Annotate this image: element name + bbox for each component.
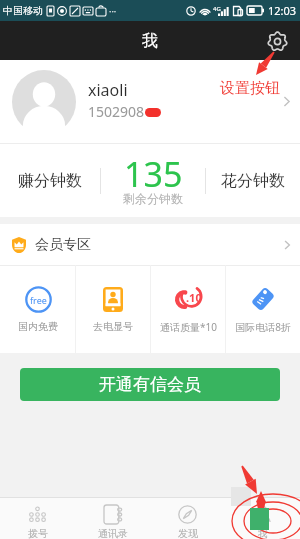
staticText: 会员专区 bbox=[35, 236, 91, 254]
staticText: 国内免费 bbox=[18, 320, 58, 333]
staticText: 赚分钟数 bbox=[18, 171, 82, 191]
staticText: 拨号 bbox=[28, 527, 48, 539]
staticText: ··· bbox=[109, 5, 117, 17]
button[interactable]: 国际电话8折 bbox=[226, 265, 300, 353]
staticText: 12:03 bbox=[268, 3, 297, 18]
button[interactable]: 开通有信会员 bbox=[20, 368, 280, 401]
staticText: 1502908 bbox=[88, 102, 145, 121]
staticText: 我 bbox=[258, 527, 268, 539]
staticText: 剩余分钟数 bbox=[123, 191, 183, 206]
staticText: 通讯录 bbox=[98, 527, 128, 539]
staticText: 设置按钮 bbox=[220, 79, 280, 98]
staticText: .10 bbox=[186, 290, 202, 305]
staticText: 4G bbox=[213, 5, 221, 13]
staticText: 135 bbox=[124, 151, 183, 197]
staticText: 去电显号 bbox=[93, 320, 133, 333]
staticText: xiaoli bbox=[88, 79, 128, 101]
button[interactable]: 赚分钟数 bbox=[0, 144, 100, 217]
button[interactable]: Settings bbox=[262, 26, 292, 56]
button[interactable]: 拨号 bbox=[0, 498, 75, 539]
staticText: 我 bbox=[142, 31, 158, 51]
staticText: 开通有信会员 bbox=[99, 374, 201, 395]
button[interactable]: 通讯录 bbox=[75, 498, 150, 539]
button[interactable]: 发现 bbox=[150, 498, 225, 539]
staticText: 国际电话8折 bbox=[235, 320, 291, 334]
staticText: free bbox=[30, 294, 47, 306]
staticText: 发现 bbox=[178, 527, 198, 539]
button[interactable]: xiaoli bbox=[0, 60, 300, 143]
button[interactable]: .10 bbox=[151, 265, 225, 353]
staticText: 通话质量*10 bbox=[160, 320, 217, 334]
staticText: 中国移动 bbox=[3, 4, 43, 17]
button[interactable]: 会员专区 bbox=[0, 224, 300, 265]
button[interactable]: 花分钟数 bbox=[206, 144, 300, 217]
button[interactable]: free bbox=[0, 265, 75, 353]
button[interactable]: 去电显号 bbox=[76, 265, 150, 353]
staticText: 花分钟数 bbox=[221, 171, 285, 191]
button[interactable]: 我 bbox=[225, 498, 300, 539]
